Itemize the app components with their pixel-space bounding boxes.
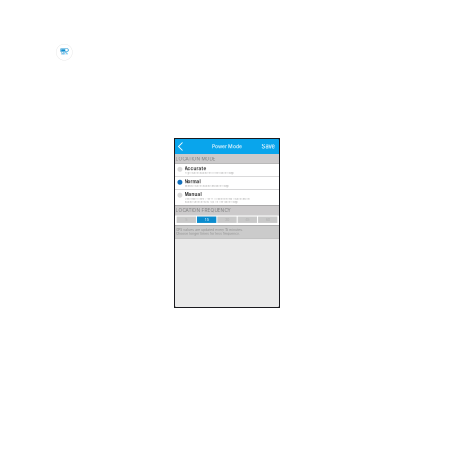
button[interactable]: Save (256, 139, 279, 154)
button[interactable]: Back (175, 139, 186, 154)
staticText: High location accuracy with more battery… (184, 172, 234, 174)
button[interactable]: 60 (258, 216, 277, 223)
button[interactable]: Accurate (175, 164, 279, 177)
staticText: Uses mobile tower / Wi-Fi to determine y… (184, 198, 249, 200)
staticText: Manual (184, 192, 201, 197)
staticText: Choose longer times for less frequency. (176, 232, 240, 235)
staticText: 45 (245, 217, 249, 222)
button[interactable]: 5 (177, 216, 196, 223)
staticText: Balanced location accuracy and battery u… (184, 185, 229, 187)
staticText: 58% (38, 49, 90, 77)
staticText: Accurate (184, 166, 206, 171)
staticText: LOCATION FREQUENCY (176, 207, 231, 213)
button[interactable]: Normal (175, 177, 279, 190)
staticText: accuracy can be affected. Opt for low ba… (184, 201, 238, 203)
button[interactable]: 30 (217, 216, 237, 223)
button[interactable]: 45 (238, 216, 257, 223)
staticText: 60 (266, 217, 270, 222)
staticText: 15 (205, 217, 209, 222)
button[interactable]: Manual (175, 190, 279, 205)
staticText: GPS values are updated every 15 minutes. (176, 228, 243, 232)
staticText: Save (261, 143, 274, 150)
staticText: LOCATION MODE (176, 156, 216, 162)
staticText: Normal (184, 179, 200, 184)
button[interactable]: 15 (197, 216, 216, 223)
staticText: 5 (185, 217, 187, 222)
staticText: 30 (225, 217, 229, 222)
staticText: Power Mode (212, 143, 242, 149)
